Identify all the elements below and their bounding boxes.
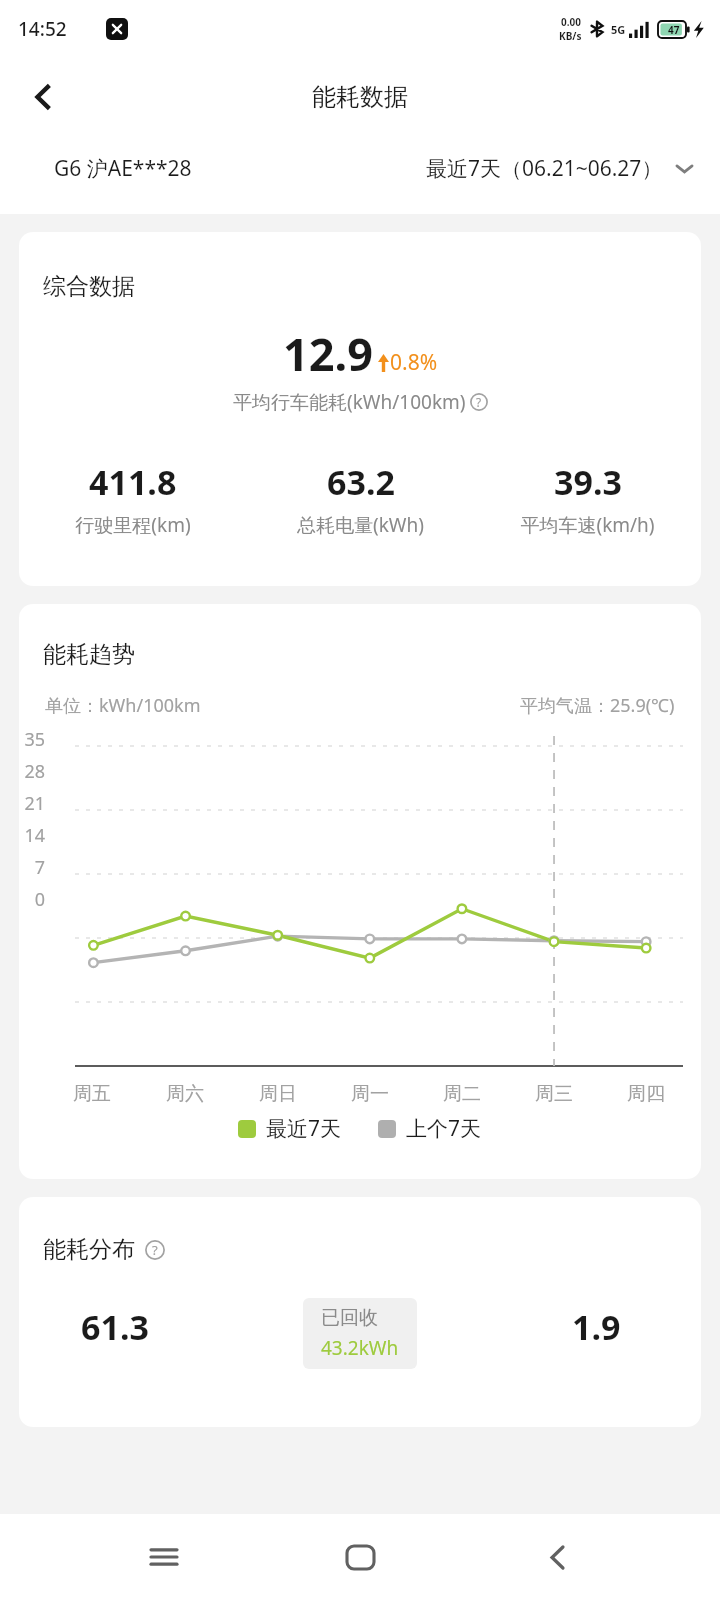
staticText: 周日 [259,1082,297,1106]
staticText: 已回收 [321,1306,378,1330]
staticText: 43.2kWh [321,1335,399,1361]
staticText: 能耗数据 [312,82,408,112]
staticText: 周四 [627,1082,665,1106]
staticText: 综合数据 [43,272,135,301]
staticText: 总耗电量(kWh) [297,512,424,538]
button[interactable]: Back [524,1524,590,1590]
staticText: 周六 [166,1082,204,1106]
staticText: 行驶里程(km) [75,512,191,538]
button[interactable]: 上个7天 [378,1114,482,1143]
staticText: 14:52 [18,16,67,42]
staticText: 28 [23,759,45,784]
staticText: 0.00 [561,15,581,29]
staticText: 21 [23,791,45,816]
staticText: 12.9 [283,323,373,384]
staticText: 能耗分布 [43,1235,135,1264]
staticText: 0 [23,887,45,912]
staticText: 周一 [351,1082,389,1106]
staticText: 周五 [73,1082,111,1106]
button[interactable]: 综合数据 [19,232,701,586]
button[interactable]: 411.8 [19,459,247,538]
staticText: 周二 [443,1082,481,1106]
button[interactable]: 39.3 [474,459,701,538]
button[interactable]: 最近7天（06.21~06.27） [426,154,694,183]
staticText: 411.8 [89,459,177,505]
staticText: 0.8% [390,348,438,377]
staticText: KB/s [559,29,582,43]
button[interactable]: 能耗分布 [19,1197,701,1427]
staticText: 上个7天 [406,1114,482,1143]
staticText: 5G [611,22,626,37]
staticText: 平均车速(km/h) [520,512,655,538]
staticText: ? [476,394,482,410]
button[interactable]: G6 沪AE***28 [54,154,192,183]
staticText: 7 [23,855,45,880]
staticText: 35 [23,727,45,752]
staticText: 单位：kWh/100km [45,693,201,718]
button[interactable]: Home [327,1524,393,1590]
button[interactable]: Recent apps [131,1524,197,1590]
staticText: 最近7天（06.21~06.27） [426,154,663,183]
staticText: 周三 [535,1082,573,1106]
staticText: 61.3 [81,1304,149,1350]
staticText: 14 [23,823,45,848]
staticText: 47 [668,23,680,37]
button[interactable]: Back [16,70,70,124]
staticText: 平均行车能耗(kWh/100km) [233,389,466,415]
staticText: 39.3 [554,459,622,505]
staticText: 最近7天 [266,1114,342,1143]
staticText: 63.2 [327,459,395,505]
button[interactable]: 63.2 [247,459,474,538]
staticText: 1.9 [572,1304,621,1350]
button[interactable]: 最近7天 [238,1114,342,1143]
staticText: ? [152,1241,158,1259]
staticText: 能耗趋势 [43,640,135,669]
staticText: 平均气温：25.9(℃) [520,693,675,718]
